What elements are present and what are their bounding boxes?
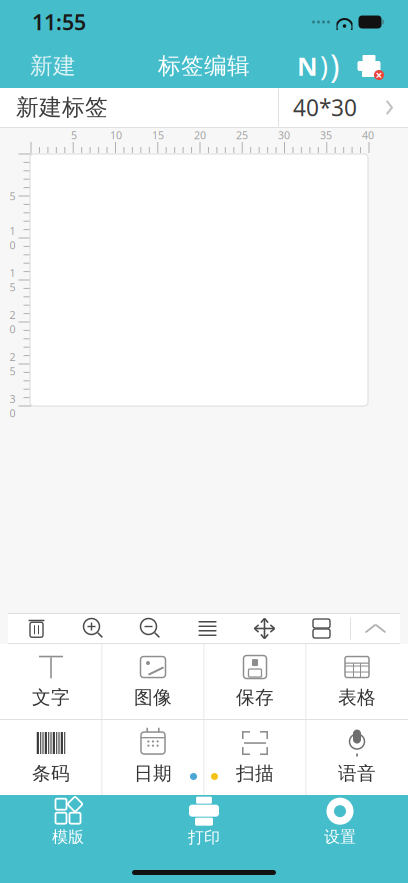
button[interactable]: 新建 [16,44,90,88]
button[interactable]: 打印 [136,795,272,849]
staticText: 日期 [134,762,172,785]
staticText: 30 [9,392,15,420]
staticText: 5 [71,128,77,142]
staticText: 表格 [338,686,376,709]
button[interactable]: NFC [291,41,346,91]
button[interactable]: Printer status [346,51,392,81]
staticText: 设置 [324,827,356,847]
staticText: 条码 [32,762,70,785]
staticText: 模版 [52,827,84,847]
staticText: 图像 [134,686,172,709]
button[interactable]: 设置 [272,795,408,849]
button[interactable]: 模版 [0,795,136,849]
staticText: 11:55 [32,8,86,36]
button[interactable]: 扫描 [204,720,305,795]
button[interactable]: Zoom in [65,613,122,643]
staticText: 文字 [32,686,70,709]
button[interactable]: 40*30 [279,88,408,126]
button[interactable]: 保存 [204,644,305,719]
staticText: 20 [9,308,15,336]
staticText: 10 [9,224,15,252]
staticText: 新建 [30,52,76,80]
button[interactable]: Align [179,613,236,643]
staticText: 保存 [236,686,274,709]
button[interactable]: Layers [293,613,350,643]
button[interactable]: Move [236,613,293,643]
staticText: 15 [9,266,15,294]
button[interactable]: 文字 [0,644,101,719]
staticText: 语音 [338,762,376,785]
staticText: ) [320,48,328,84]
staticText: ) [330,45,340,87]
staticText: 扫描 [236,762,274,785]
button[interactable]: 语音 [306,720,407,795]
button[interactable]: 表格 [306,644,407,719]
staticText: 25 [236,128,248,142]
staticText: 10 [110,128,122,142]
staticText: 25 [9,350,15,378]
staticText: 打印 [188,828,220,847]
staticText: 15 [152,128,164,142]
staticText: 40 [362,128,374,142]
button[interactable]: 图像 [102,644,203,719]
button[interactable]: 条码 [0,720,101,795]
staticText: 40*30 [293,92,357,122]
staticText: 标签编辑 [158,52,250,80]
staticText: 35 [320,128,332,142]
button[interactable]: Collapse [351,613,400,643]
button[interactable]: Delete [8,613,65,643]
button[interactable]: 日期 [102,720,203,795]
staticText: 5 [9,189,15,203]
staticText: N [297,49,318,83]
button[interactable]: Zoom out [122,613,179,643]
staticText: 30 [278,128,290,142]
button[interactable]: 新建标签 [0,88,278,126]
staticText: × [375,67,382,83]
staticText: 20 [194,128,206,142]
staticText: 新建标签 [16,94,108,121]
